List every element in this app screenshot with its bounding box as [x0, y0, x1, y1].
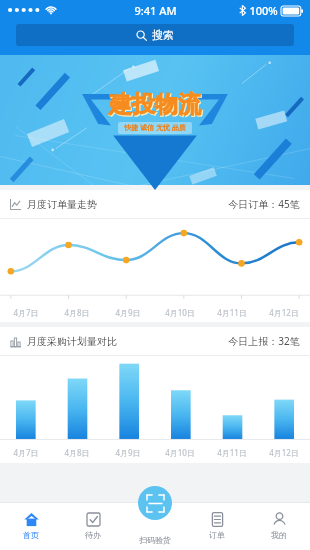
staticText: 4月8日 [64, 307, 90, 318]
staticText: 4月7日 [13, 307, 39, 318]
staticText: 快捷 诚信 无忧 品质 [124, 123, 186, 133]
staticText: 9:41 AM [134, 3, 177, 18]
staticText: 扫码验货 [139, 535, 171, 545]
staticText: 月度采购计划量对比 [27, 335, 117, 348]
button[interactable]: 待办 [62, 502, 124, 550]
staticText: 100% [249, 3, 278, 18]
button[interactable]: 首页 [0, 502, 62, 550]
staticText: 4月9日 [115, 307, 141, 318]
staticText: 4月11日 [217, 447, 247, 458]
staticText: 4月10日 [165, 307, 195, 318]
staticText: 月度订单量走势 [27, 198, 97, 211]
staticText: 建投物流 [110, 91, 202, 120]
staticText: 4月7日 [13, 447, 39, 458]
staticText: 4月9日 [115, 447, 141, 458]
staticText: 4月12日 [269, 307, 299, 318]
button[interactable]: 搜索 [16, 24, 294, 46]
staticText: 4月12日 [269, 447, 299, 458]
staticText: 首页 [23, 530, 39, 540]
staticText: 今日订单：45笔 [228, 197, 300, 211]
staticText: 我的 [271, 530, 287, 540]
staticText: 订单 [209, 530, 225, 540]
staticText: 4月11日 [217, 307, 247, 318]
staticText: 建投物流 [109, 90, 201, 119]
staticText: 今日上报：32笔 [228, 334, 300, 348]
button[interactable]: 扫码验货 [138, 486, 172, 520]
staticText: 4月8日 [64, 447, 90, 458]
button[interactable]: 订单 [186, 502, 248, 550]
staticText: 搜索 [152, 28, 174, 42]
staticText: 待办 [85, 530, 101, 540]
staticText: 4月10日 [165, 447, 195, 458]
button[interactable]: 月度采购计划量对比 [0, 327, 310, 463]
button[interactable]: 月度订单量走势 [0, 190, 310, 322]
button[interactable]: 我的 [248, 502, 310, 550]
